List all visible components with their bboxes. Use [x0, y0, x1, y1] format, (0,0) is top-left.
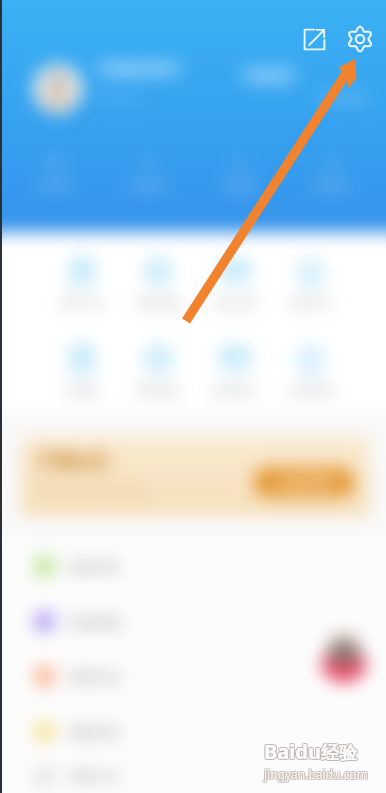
button[interactable]: 我的订单 [59, 258, 105, 310]
staticText: VIP会员 [251, 69, 287, 83]
button[interactable]: 我的红包 [0, 649, 386, 704]
staticText: jingyan.baidu.com [264, 765, 368, 781]
staticText: 经验 [322, 742, 358, 765]
button[interactable]: 0 [294, 152, 370, 193]
button[interactable]: 在线客服 [288, 345, 334, 397]
button[interactable]: 我的钱包 [135, 345, 181, 397]
button[interactable]: Share [292, 17, 336, 61]
staticText: jingyan.baidu.com [265, 766, 369, 782]
button[interactable]: Avatar [33, 64, 83, 114]
button[interactable]: 立即开通 [253, 467, 355, 497]
staticText: jingyan.baidu.com [263, 765, 367, 781]
button[interactable]: 我的积分 [288, 258, 334, 310]
staticText: jingyan.baidu.com [265, 765, 369, 781]
button[interactable]: 5 [201, 152, 277, 193]
staticText: 经验 [321, 741, 357, 764]
button[interactable]: 优惠券 [59, 345, 105, 397]
button[interactable]: 帮助中心 [0, 759, 386, 793]
staticText: 经验 [321, 742, 357, 765]
staticText: Baidu [265, 737, 322, 764]
button[interactable]: 我的评价 [0, 539, 386, 594]
button[interactable]: 12 [16, 152, 92, 193]
staticText: Baidu [264, 738, 321, 765]
button[interactable]: Settings [338, 17, 382, 61]
staticText: 经验 [320, 741, 356, 764]
button[interactable]: 我的等级 [320, 91, 368, 106]
button[interactable]: 我的客服 [0, 594, 386, 649]
button[interactable]: 我的收藏 [135, 258, 181, 310]
staticText: 经验 [322, 743, 358, 766]
staticText: 帮助中心 [69, 768, 121, 784]
staticText: Baidu [263, 737, 320, 764]
staticText: 奔跑的蜗牛 [99, 59, 184, 80]
staticText: Baidu [265, 738, 322, 765]
staticText: jingyan.baidu.com [263, 766, 367, 782]
button[interactable]: 浏览足迹 [212, 258, 258, 310]
staticText: Baidu [263, 739, 320, 766]
staticText: 邀请好友 [69, 724, 121, 740]
button[interactable]: 邀请好友 [0, 704, 386, 759]
staticText: 立即开通 [278, 474, 330, 490]
staticText: 开通会员 [36, 450, 108, 473]
staticText: 我的等级 [320, 91, 368, 106]
button[interactable]: VIP会员 [240, 66, 298, 85]
staticText: Baidu [263, 738, 320, 765]
staticText: Baidu [264, 739, 321, 766]
button[interactable]: 开通会员 [20, 436, 370, 516]
button[interactable]: 3 [109, 152, 185, 193]
staticText: 经验 [321, 743, 357, 766]
button[interactable]: 收货地址 [212, 345, 258, 397]
staticText: 经验 [320, 742, 356, 765]
staticText: Baidu [264, 737, 321, 764]
staticText: jingyan.baidu.com [265, 767, 369, 783]
button[interactable]: Assistant [318, 630, 370, 682]
staticText: jingyan.baidu.com [264, 767, 368, 783]
staticText: jingyan.baidu.com [264, 766, 368, 782]
staticText: jingyan.baidu.com [263, 767, 367, 783]
staticText: Baidu [265, 739, 322, 766]
staticText: 经验 [320, 743, 356, 766]
staticText: 经验 [322, 741, 358, 764]
